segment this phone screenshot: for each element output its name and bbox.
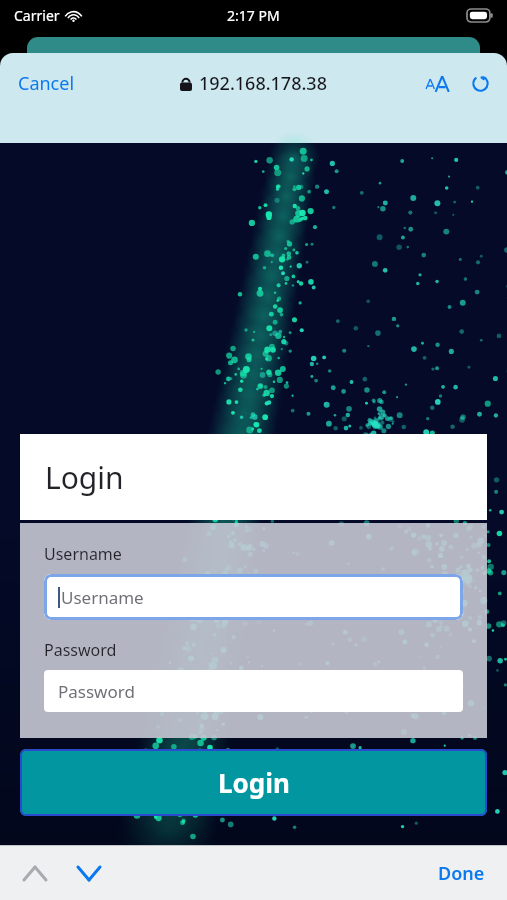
button[interactable]: Login (20, 749, 487, 816)
staticText: Password (44, 639, 117, 661)
staticText: Login (45, 457, 124, 498)
staticText: Carrier (14, 6, 60, 25)
staticText: Password (58, 680, 135, 703)
button[interactable]: Cancel (10, 65, 83, 102)
staticText: Done (438, 861, 485, 886)
staticText: Cancel (18, 71, 75, 96)
button[interactable]: Username (44, 574, 463, 620)
button[interactable]: Previous field (16, 859, 54, 888)
button[interactable]: Reload page (466, 69, 495, 98)
button[interactable]: Password (44, 670, 463, 712)
button[interactable]: Text size options (418, 70, 456, 98)
staticText: Username (61, 586, 144, 609)
staticText: 192.168.178.38 (199, 71, 327, 96)
staticText: Login (218, 765, 290, 800)
button[interactable]: Next field (70, 859, 108, 888)
staticText: 2:17 PM (227, 6, 280, 25)
button[interactable]: Done (430, 855, 493, 892)
staticText: Username (44, 543, 122, 565)
